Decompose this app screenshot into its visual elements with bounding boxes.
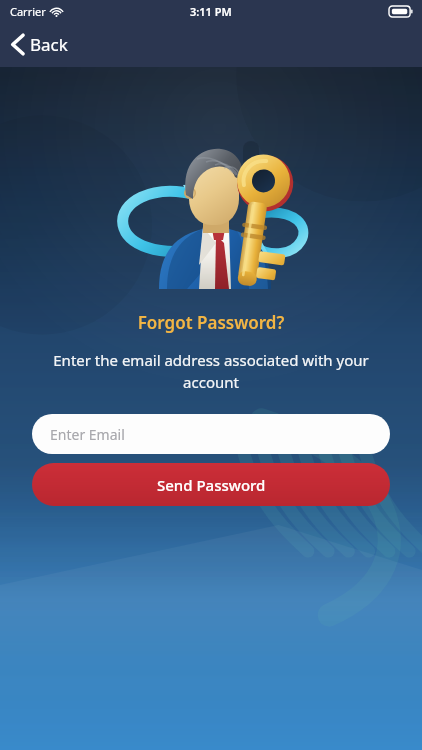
button[interactable]: Send Password (32, 463, 390, 506)
staticText: Send Password (157, 475, 266, 495)
button[interactable]: Enter Email (32, 414, 390, 454)
staticText: Enter Email (50, 425, 125, 444)
staticText: 3:11 PM (190, 4, 232, 19)
staticText: Enter the email address associated with … (42, 350, 380, 393)
staticText: Carrier (10, 4, 46, 19)
button[interactable]: Back (7, 28, 73, 61)
staticText: Back (30, 33, 68, 56)
staticText: Forgot Password? (0, 311, 422, 334)
